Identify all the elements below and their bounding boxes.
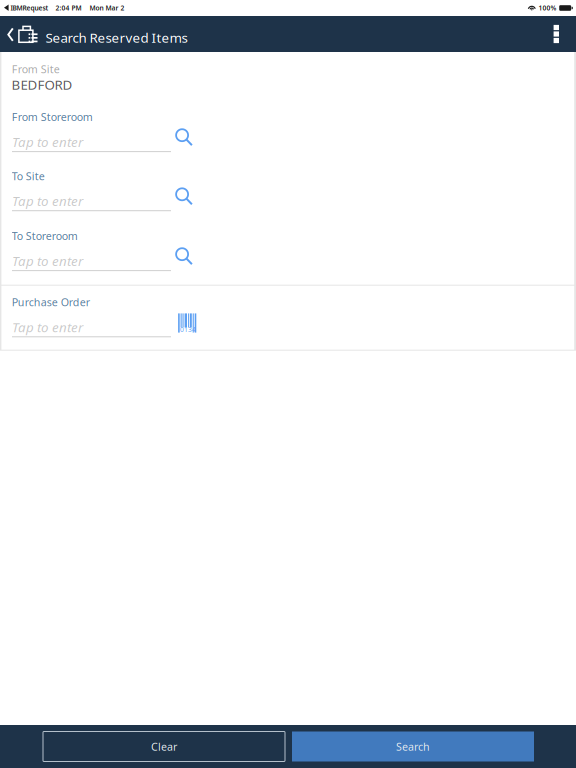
- staticText: From Site: [12, 62, 60, 76]
- staticText: To Site: [12, 169, 45, 183]
- staticText: Tap to enter: [12, 133, 83, 151]
- button[interactable]: Clear: [43, 731, 285, 761]
- staticText: Tap to enter: [12, 252, 83, 270]
- button[interactable]: Search To Storeroom: [169, 242, 198, 271]
- staticText: Purchase Order: [12, 295, 90, 309]
- staticText: Clear: [151, 739, 177, 754]
- button[interactable]: Scan barcode for Purchase Order: [172, 307, 202, 339]
- button[interactable]: Search To Site: [169, 182, 198, 211]
- staticText: 100%: [538, 4, 556, 12]
- staticText: Search: [396, 739, 430, 754]
- staticText: Mon Mar 2: [89, 4, 124, 12]
- staticText: To Storeroom: [12, 229, 78, 243]
- button[interactable]: Search From Storeroom: [169, 123, 198, 152]
- staticText: BEDFORD: [11, 76, 72, 93]
- staticText: Search Reserved Items: [45, 29, 187, 46]
- button[interactable]: Back: [0, 16, 43, 52]
- staticText: From Storeroom: [12, 110, 93, 124]
- button[interactable]: Search: [292, 731, 534, 761]
- staticText: Tap to enter: [12, 192, 83, 210]
- staticText: 0134: [180, 325, 196, 334]
- staticText: Tap to enter: [12, 318, 83, 336]
- button[interactable]: More options: [540, 16, 576, 52]
- staticText: IBMRequest: [10, 4, 48, 12]
- staticText: 2:04 PM: [55, 4, 81, 12]
